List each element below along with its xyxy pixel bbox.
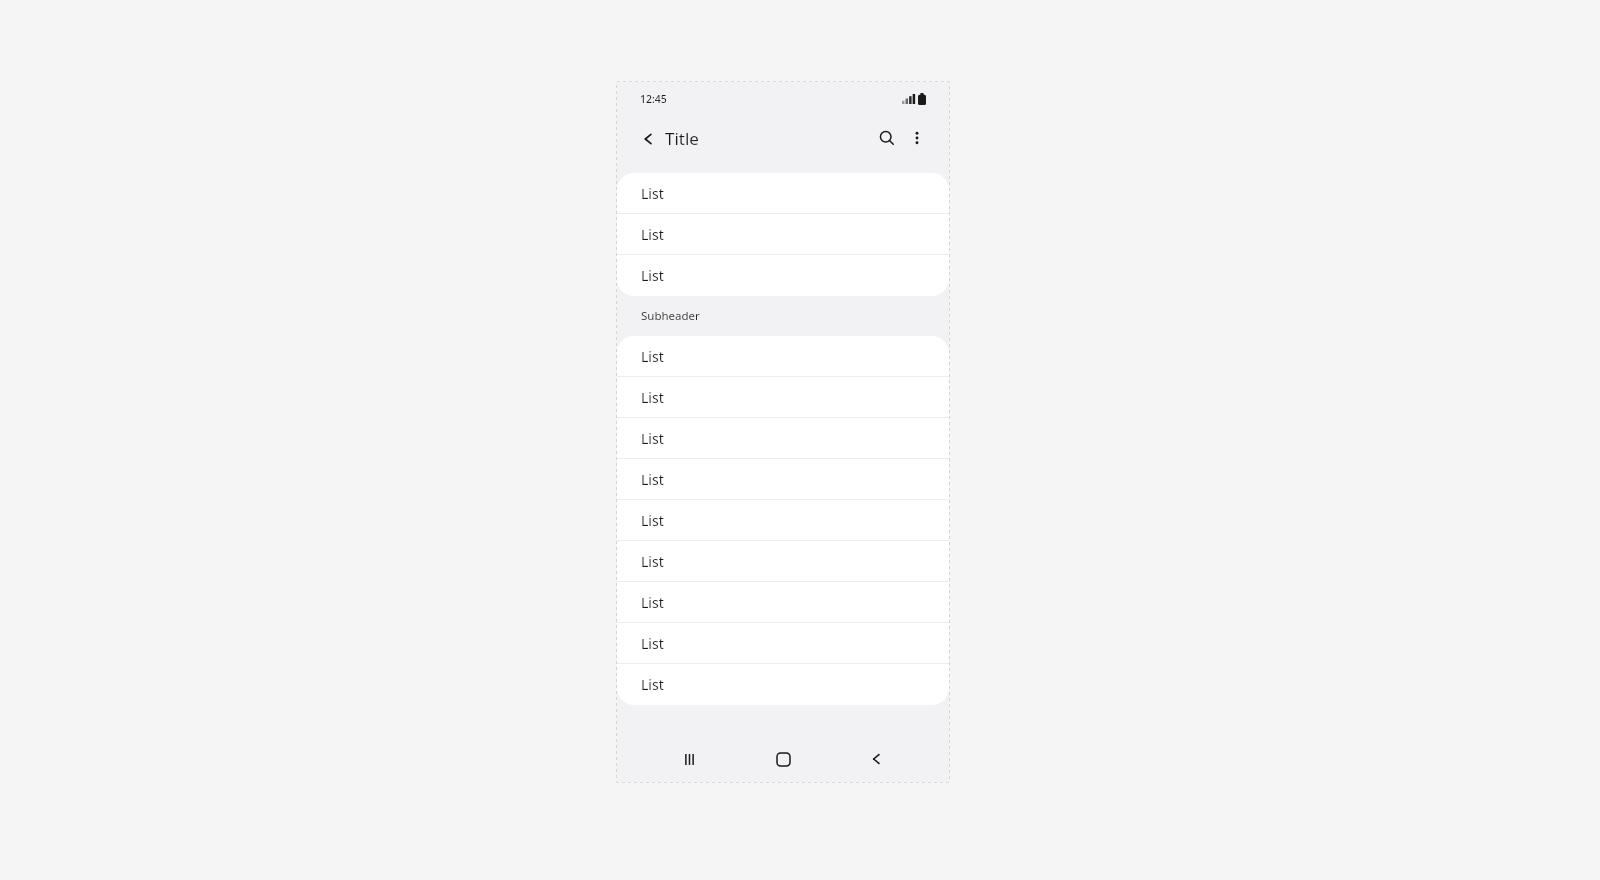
staticText: List xyxy=(641,347,664,366)
staticText: List xyxy=(641,225,664,244)
staticText: List xyxy=(641,552,664,571)
staticText: List xyxy=(641,470,664,489)
button[interactable]: List xyxy=(617,214,949,255)
button[interactable]: Back xyxy=(639,127,699,150)
button[interactable]: List xyxy=(617,377,949,418)
button[interactable]: List xyxy=(617,500,949,541)
button[interactable]: Search xyxy=(873,124,901,152)
staticText: List xyxy=(641,388,664,407)
staticText: List xyxy=(641,429,664,448)
staticText: Subheader xyxy=(641,308,700,324)
button[interactable]: Back xyxy=(855,737,899,781)
staticText: List xyxy=(641,511,664,530)
staticText: List xyxy=(641,184,664,203)
button[interactable]: List xyxy=(617,664,949,705)
button[interactable]: List xyxy=(617,173,949,214)
staticText: List xyxy=(641,593,664,612)
staticText: Title xyxy=(665,127,699,150)
button[interactable]: List xyxy=(617,459,949,500)
staticText: List xyxy=(641,266,664,285)
button[interactable]: List xyxy=(617,541,949,582)
button[interactable]: List xyxy=(617,623,949,664)
staticText: 12:45 xyxy=(640,92,667,106)
button[interactable]: List xyxy=(617,418,949,459)
staticText: List xyxy=(641,675,664,694)
button[interactable]: List xyxy=(617,255,949,296)
button[interactable]: Home xyxy=(761,737,805,781)
other: Back xyxy=(639,129,659,149)
button[interactable]: List xyxy=(617,336,949,377)
staticText: List xyxy=(641,634,664,653)
button[interactable]: List xyxy=(617,582,949,623)
button[interactable]: More options xyxy=(903,124,931,152)
button[interactable]: Recent apps xyxy=(667,737,711,781)
